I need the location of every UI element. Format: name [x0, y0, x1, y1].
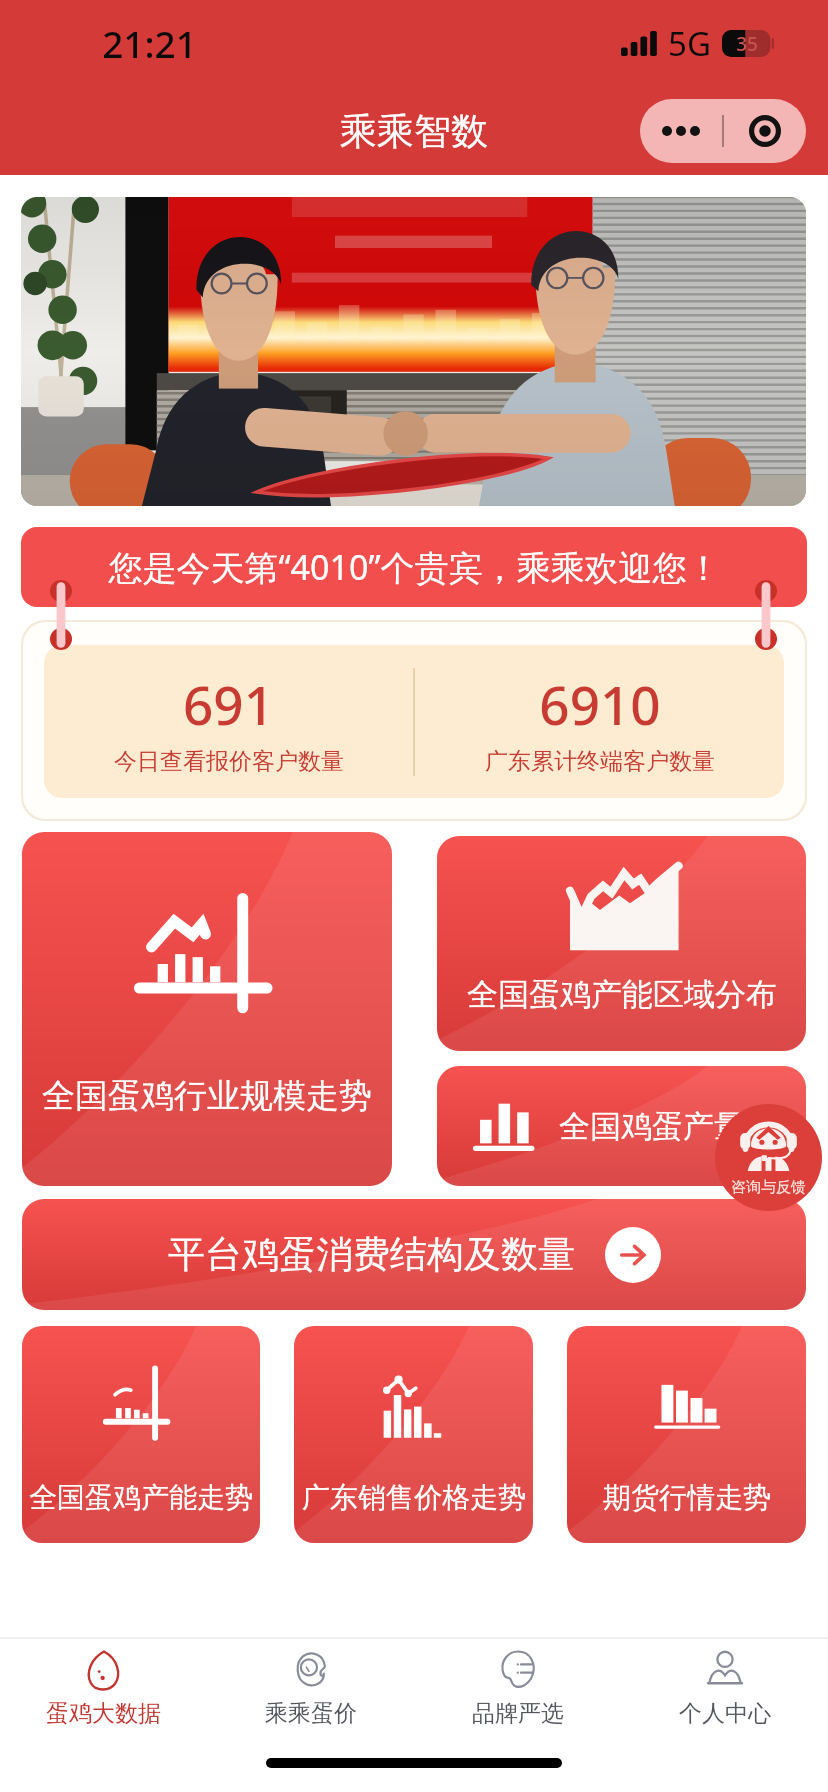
button[interactable]: 期货行情走势	[567, 1326, 806, 1543]
button[interactable]: 品牌严选	[414, 1646, 621, 1733]
staticText: 平台鸡蛋消费结构及数量	[168, 1231, 575, 1278]
button[interactable]: 全国蛋鸡行业规模走势	[22, 832, 392, 1186]
staticText: 乘乘蛋价	[265, 1699, 357, 1728]
button[interactable]: 全国蛋鸡产能走势	[22, 1326, 260, 1543]
staticText: 691	[183, 668, 274, 740]
button[interactable]: More options	[640, 99, 722, 163]
button[interactable]: Close mini program	[724, 99, 806, 163]
button[interactable]: Consult and feedback	[715, 1104, 822, 1211]
staticText: 您是今天第“4010”个贵宾，乘乘欢迎您！	[108, 544, 721, 590]
staticText: 21:21	[102, 18, 197, 68]
staticText: 咨询与反馈	[731, 1178, 806, 1197]
staticText: 乘乘智数	[340, 108, 488, 155]
button[interactable]: 个人中心	[621, 1646, 828, 1733]
staticText: 广东累计终端客户数量	[485, 747, 715, 776]
button[interactable]: 乘乘蛋价	[207, 1646, 414, 1733]
staticText: 期货行情走势	[603, 1480, 771, 1515]
button[interactable]: 蛋鸡大数据	[0, 1646, 207, 1733]
staticText: 全国蛋鸡行业规模走势	[42, 1075, 372, 1117]
staticText: 5G	[668, 21, 711, 66]
staticText: 品牌严选	[472, 1699, 564, 1728]
button[interactable]: 平台鸡蛋消费结构及数量	[22, 1199, 806, 1310]
staticText: 35	[736, 31, 758, 57]
staticText: 个人中心	[679, 1699, 771, 1728]
button[interactable]: 全国蛋鸡产能区域分布	[437, 836, 806, 1051]
staticText: 今日查看报价客户数量	[114, 747, 344, 776]
staticText: 蛋鸡大数据	[46, 1699, 161, 1728]
staticText: 广东销售价格走势	[302, 1480, 526, 1515]
staticText: 全国蛋鸡产能区域分布	[467, 975, 777, 1014]
button[interactable]: 广东销售价格走势	[294, 1326, 533, 1543]
button[interactable]: 全国鸡蛋产量及小区	[437, 1066, 806, 1186]
staticText: 6910	[539, 668, 661, 740]
button[interactable]: 691	[44, 645, 784, 798]
staticText: 全国蛋鸡产能走势	[29, 1480, 253, 1515]
staticText: 全国鸡蛋产量及小区	[559, 1107, 806, 1146]
button[interactable]: Signing ceremony banner	[21, 197, 806, 506]
button[interactable]: 您是今天第“4010”个贵宾，乘乘欢迎您！	[21, 527, 807, 607]
